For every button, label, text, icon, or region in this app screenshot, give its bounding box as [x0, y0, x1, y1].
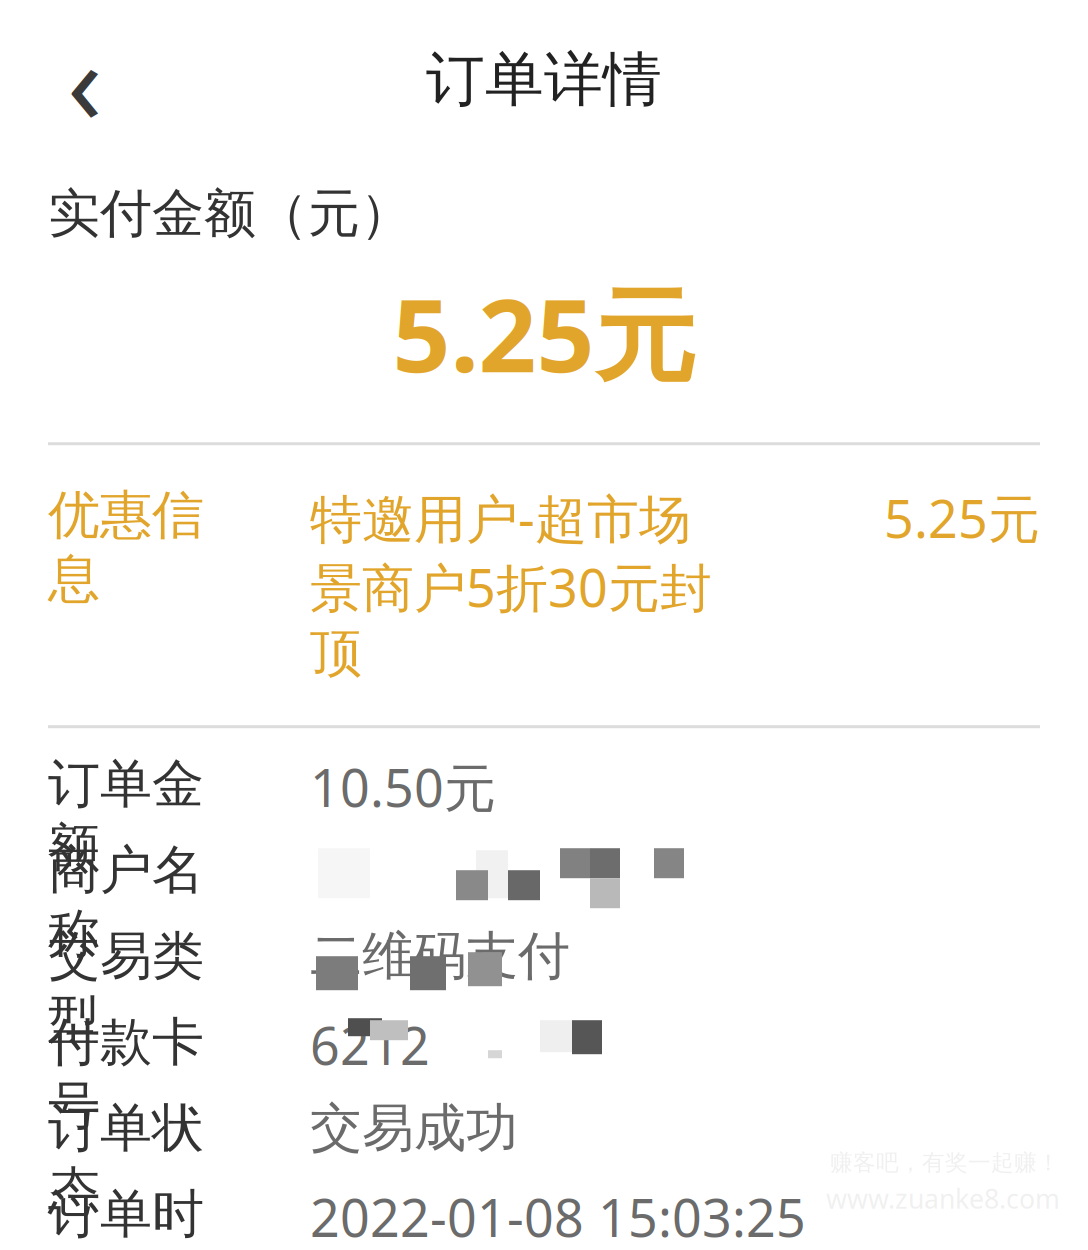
staticText: 5.25元 [392, 266, 695, 400]
staticText: 二维码支付 [310, 924, 570, 988]
staticText: 2022-01-08 15:03:25 [310, 1182, 806, 1250]
staticText: 订单时间 [48, 1182, 204, 1250]
staticText: 6212 [310, 1010, 430, 1079]
staticText: 实付金额（元） [48, 182, 412, 246]
staticText: ‹ [67, 4, 103, 156]
staticText: 赚客吧，有奖一起赚！ [830, 1149, 1060, 1176]
staticText: 交易类型 [48, 924, 204, 1052]
staticText: 优惠信息 [48, 483, 204, 611]
staticText: 订单详情 [426, 44, 662, 116]
staticText: 订单状态 [48, 1096, 204, 1224]
staticText: 商户名称 [48, 838, 204, 966]
staticText: 交易成功 [310, 1096, 518, 1160]
staticText: 订单金额 [48, 752, 204, 880]
staticText: 5.25元 [884, 483, 1040, 552]
staticText: www.zuanke8.com [826, 1181, 1060, 1216]
staticText: 特邀用户-超市场景商户5折30元封顶 [310, 483, 712, 685]
staticText: 付款卡号 [48, 1010, 204, 1138]
staticText: 10.50元 [310, 752, 496, 821]
button[interactable]: 返回 [42, 35, 128, 125]
